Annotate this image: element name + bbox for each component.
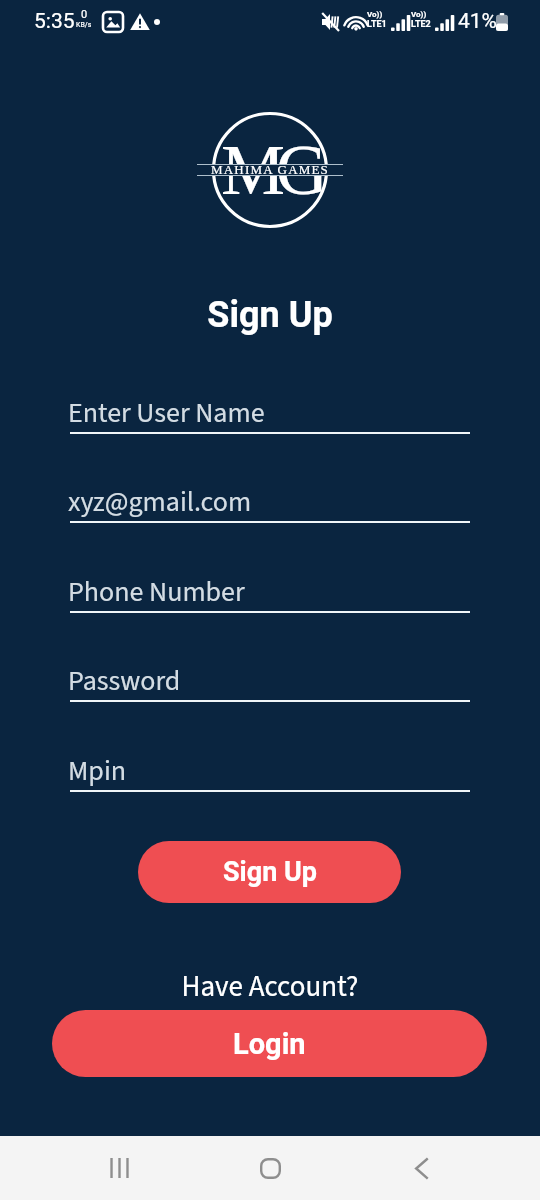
button[interactable]: Mpin (70, 748, 470, 792)
staticText: Mpin (68, 751, 127, 791)
button[interactable]: Recent apps (69, 1136, 169, 1200)
staticText: Vo)) (411, 10, 427, 19)
button[interactable]: Back (371, 1136, 471, 1200)
button[interactable]: Password (70, 658, 470, 702)
staticText: Phone Number (68, 572, 245, 612)
staticText: Login (233, 1027, 306, 1061)
button[interactable]: Sign Up (138, 841, 401, 903)
staticText: Password (68, 661, 181, 701)
staticText: MAHIMA GAMES (211, 162, 330, 176)
button[interactable]: Enter User Name (70, 390, 470, 434)
staticText: KB/s (76, 21, 92, 29)
button[interactable]: Phone Number (70, 569, 470, 613)
staticText: Sign Up (0, 294, 540, 336)
staticText: LTE2 (411, 19, 431, 30)
button[interactable]: Login (52, 1010, 487, 1077)
staticText: Enter User Name (68, 393, 265, 433)
staticText: LTE1 (367, 19, 387, 30)
staticText: Sign Up (223, 856, 317, 888)
staticText: xyz@gmail.com (68, 482, 252, 522)
button[interactable]: xyz@gmail.com (70, 479, 470, 523)
staticText: MG (221, 130, 320, 210)
button[interactable]: Home (220, 1136, 320, 1200)
staticText: 0 (81, 8, 88, 21)
staticText: 41% (458, 9, 497, 34)
staticText: Have Account? (0, 966, 540, 1007)
staticText: 5:35 (34, 9, 75, 34)
staticText: Vo)) (367, 10, 383, 19)
